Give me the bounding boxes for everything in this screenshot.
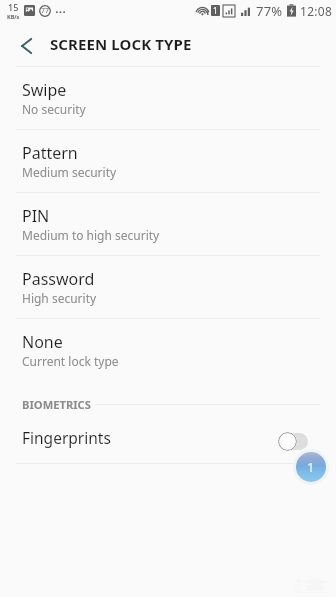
button[interactable]: PIN bbox=[0, 193, 336, 255]
staticText: Password bbox=[22, 268, 95, 290]
staticText: Swipe bbox=[22, 79, 67, 101]
staticText: 77% bbox=[256, 2, 283, 20]
staticText: 77 bbox=[41, 6, 50, 16]
staticText: 15 bbox=[8, 1, 19, 13]
button[interactable]: Fingerprints bbox=[0, 418, 336, 463]
staticText: None bbox=[22, 331, 63, 353]
staticText: Current lock type bbox=[22, 353, 119, 369]
staticText: 1 bbox=[213, 5, 218, 16]
button[interactable]: Navigate up bbox=[6, 23, 46, 69]
staticText: SCREEN LOCK TYPE bbox=[50, 34, 192, 54]
button[interactable]: Pattern bbox=[0, 130, 336, 192]
staticText: 12:08 bbox=[300, 3, 333, 19]
staticText: No security bbox=[22, 101, 86, 117]
staticText: High security bbox=[22, 290, 97, 306]
button[interactable]: Password bbox=[0, 256, 336, 318]
staticText: Fingerprints bbox=[22, 427, 111, 448]
button[interactable]: Swipe bbox=[0, 67, 336, 129]
staticText: BIOMETRICS bbox=[22, 397, 91, 412]
staticText: Medium to high security bbox=[22, 227, 160, 243]
staticText: KB/s bbox=[7, 13, 20, 20]
staticText: 1 bbox=[307, 458, 315, 476]
button[interactable]: None bbox=[0, 319, 336, 381]
staticText: Pattern bbox=[22, 142, 78, 164]
staticText: Medium security bbox=[22, 164, 117, 180]
staticText: PIN bbox=[22, 205, 50, 227]
